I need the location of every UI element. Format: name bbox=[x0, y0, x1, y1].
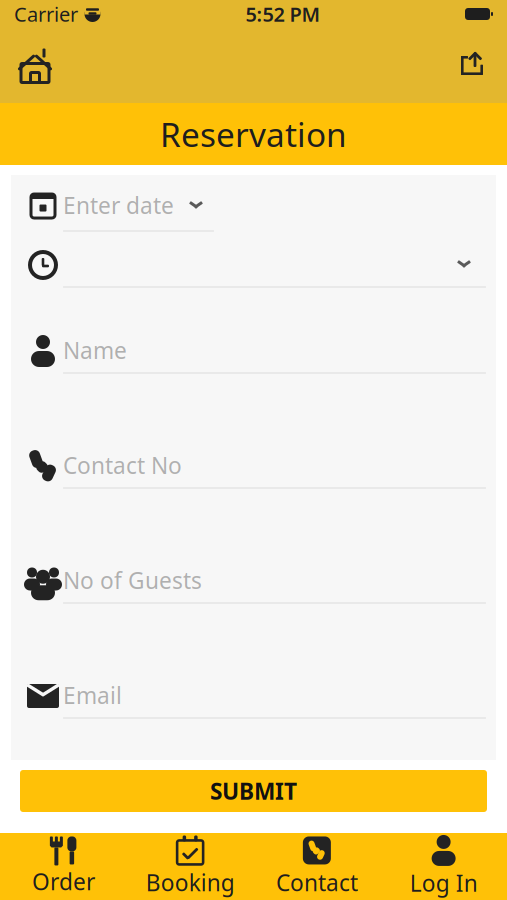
button[interactable]: SUBMIT bbox=[20, 770, 487, 812]
staticText: Contact No bbox=[63, 450, 182, 480]
button[interactable]: Home bbox=[8, 38, 62, 92]
staticText: Carrier bbox=[14, 1, 78, 27]
staticText: Reservation bbox=[160, 112, 347, 156]
staticText: Booking bbox=[146, 867, 235, 897]
button[interactable]: Share bbox=[445, 38, 499, 92]
button[interactable]: Log In bbox=[380, 833, 507, 899]
staticText: 5:52 PM bbox=[245, 1, 320, 27]
staticText: Log In bbox=[410, 868, 478, 898]
staticText: No of Guests bbox=[63, 565, 202, 595]
staticText: Email bbox=[63, 680, 122, 710]
staticText: Enter date bbox=[63, 190, 174, 220]
button[interactable]: Contact bbox=[253, 833, 380, 899]
staticText: SUBMIT bbox=[210, 776, 297, 806]
staticText: Order bbox=[32, 866, 95, 896]
button[interactable]: Booking bbox=[127, 833, 254, 899]
staticText: Contact bbox=[276, 867, 358, 897]
button[interactable]: Order bbox=[0, 833, 127, 899]
staticText: Name bbox=[63, 335, 127, 365]
